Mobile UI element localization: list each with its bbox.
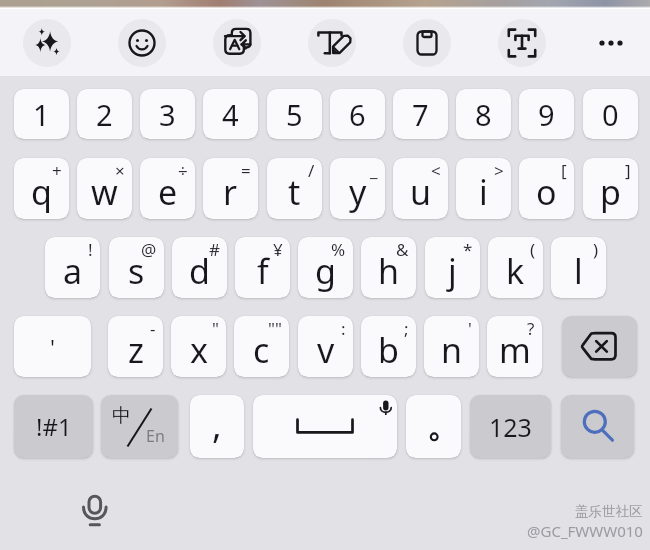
button[interactable]: Text edit <box>308 19 356 67</box>
button[interactable]: ÷ <box>140 158 195 219</box>
button[interactable]: More options <box>587 19 635 67</box>
button[interactable]: ? <box>487 316 542 377</box>
staticText: p <box>600 169 621 215</box>
staticText: ¥ <box>273 238 283 261</box>
staticText: , <box>212 400 222 449</box>
staticText: 1 <box>33 95 50 134</box>
staticText: × <box>115 159 125 182</box>
button[interactable]: 6 <box>330 89 385 139</box>
staticText: # <box>209 238 220 261</box>
staticText: @GC_FWWW010 <box>527 521 643 541</box>
staticText: ' <box>468 317 472 340</box>
button[interactable]: Translate <box>213 19 261 67</box>
staticText: 9 <box>538 95 555 134</box>
staticText: @ <box>141 238 157 261</box>
staticText: En <box>146 425 165 447</box>
button[interactable]: , <box>190 395 244 458</box>
button[interactable]: > <box>456 158 511 219</box>
button[interactable]: ' <box>424 316 479 377</box>
button[interactable]: 7 <box>393 89 448 139</box>
button[interactable]: ! <box>45 237 100 298</box>
staticText: ; <box>404 317 409 340</box>
staticText: ÷ <box>178 159 188 182</box>
button[interactable]: "" <box>234 316 289 377</box>
staticText: [ <box>561 159 567 182</box>
button[interactable]: 2 <box>77 89 132 139</box>
button[interactable]: Emoji <box>118 19 166 67</box>
staticText: = <box>241 159 251 182</box>
staticText: 7 <box>412 95 429 134</box>
button[interactable]: [ <box>519 158 574 219</box>
staticText: ! <box>88 238 93 261</box>
staticText: e <box>158 169 178 215</box>
button[interactable]: ; <box>361 316 416 377</box>
button[interactable]: AI assist <box>23 19 71 67</box>
button[interactable]: 4 <box>203 89 258 139</box>
staticText: ? <box>527 317 535 340</box>
button[interactable]: ( <box>488 237 543 298</box>
button[interactable]: ] <box>583 158 638 219</box>
button[interactable]: ¥ <box>235 237 290 298</box>
button[interactable]: ) <box>551 237 606 298</box>
staticText: ] <box>625 159 631 182</box>
button[interactable]: 3 <box>140 89 195 139</box>
staticText: 盖乐世社区 <box>575 503 643 520</box>
button[interactable]: 8 <box>456 89 511 139</box>
staticText: f <box>257 248 269 294</box>
button[interactable]: Switch Chinese English <box>101 395 178 458</box>
button[interactable]: @ <box>109 237 164 298</box>
button[interactable]: Text scan <box>498 19 546 67</box>
staticText: > <box>494 159 504 182</box>
staticText: q <box>31 169 52 215</box>
button[interactable]: < <box>393 158 448 219</box>
button[interactable]: Period <box>406 395 461 458</box>
staticText: - <box>150 317 156 340</box>
button[interactable]: Search <box>561 395 634 458</box>
staticText: ) <box>593 238 599 261</box>
staticText: o <box>536 169 557 215</box>
button[interactable]: Voice input <box>72 488 118 534</box>
staticText: + <box>52 159 62 182</box>
button[interactable]: 123 <box>470 395 551 458</box>
staticText: ' <box>50 332 55 362</box>
staticText: v <box>317 327 335 373</box>
staticText: "" <box>268 317 282 340</box>
button[interactable]: - <box>108 316 163 377</box>
button[interactable]: * <box>425 237 480 298</box>
button[interactable]: 5 <box>267 89 322 139</box>
button[interactable]: : <box>298 316 353 377</box>
staticText: h <box>378 248 400 294</box>
button[interactable]: + <box>14 158 69 219</box>
staticText: _ <box>370 159 378 182</box>
button[interactable]: !#1 <box>14 395 93 458</box>
button[interactable]: × <box>77 158 132 219</box>
staticText: 3 <box>159 95 176 134</box>
button[interactable]: & <box>361 237 416 298</box>
button[interactable]: 0 <box>583 89 638 139</box>
button[interactable]: % <box>298 237 353 298</box>
button[interactable]: 9 <box>519 89 574 139</box>
staticText: & <box>396 238 409 261</box>
button[interactable]: 1 <box>14 89 69 139</box>
button[interactable]: / <box>267 158 322 219</box>
button[interactable]: # <box>172 237 227 298</box>
staticText: / <box>308 159 315 182</box>
button[interactable]: ' <box>14 316 91 377</box>
staticText: 0 <box>602 95 619 134</box>
staticText: j <box>448 248 457 294</box>
button[interactable]: " <box>171 316 226 377</box>
staticText: d <box>189 248 210 294</box>
button[interactable]: Clipboard <box>403 19 451 67</box>
staticText: 6 <box>349 95 366 134</box>
staticText: ( <box>530 238 536 261</box>
staticText: 中 <box>112 404 131 428</box>
button[interactable]: _ <box>330 158 385 219</box>
staticText: w <box>91 169 118 215</box>
button[interactable]: Backspace <box>562 316 637 377</box>
staticText: 5 <box>286 95 303 134</box>
staticText: !#1 <box>36 410 72 443</box>
button[interactable]: Space <box>253 395 397 458</box>
button[interactable]: = <box>203 158 258 219</box>
staticText: < <box>431 159 441 182</box>
staticText: s <box>128 248 145 294</box>
